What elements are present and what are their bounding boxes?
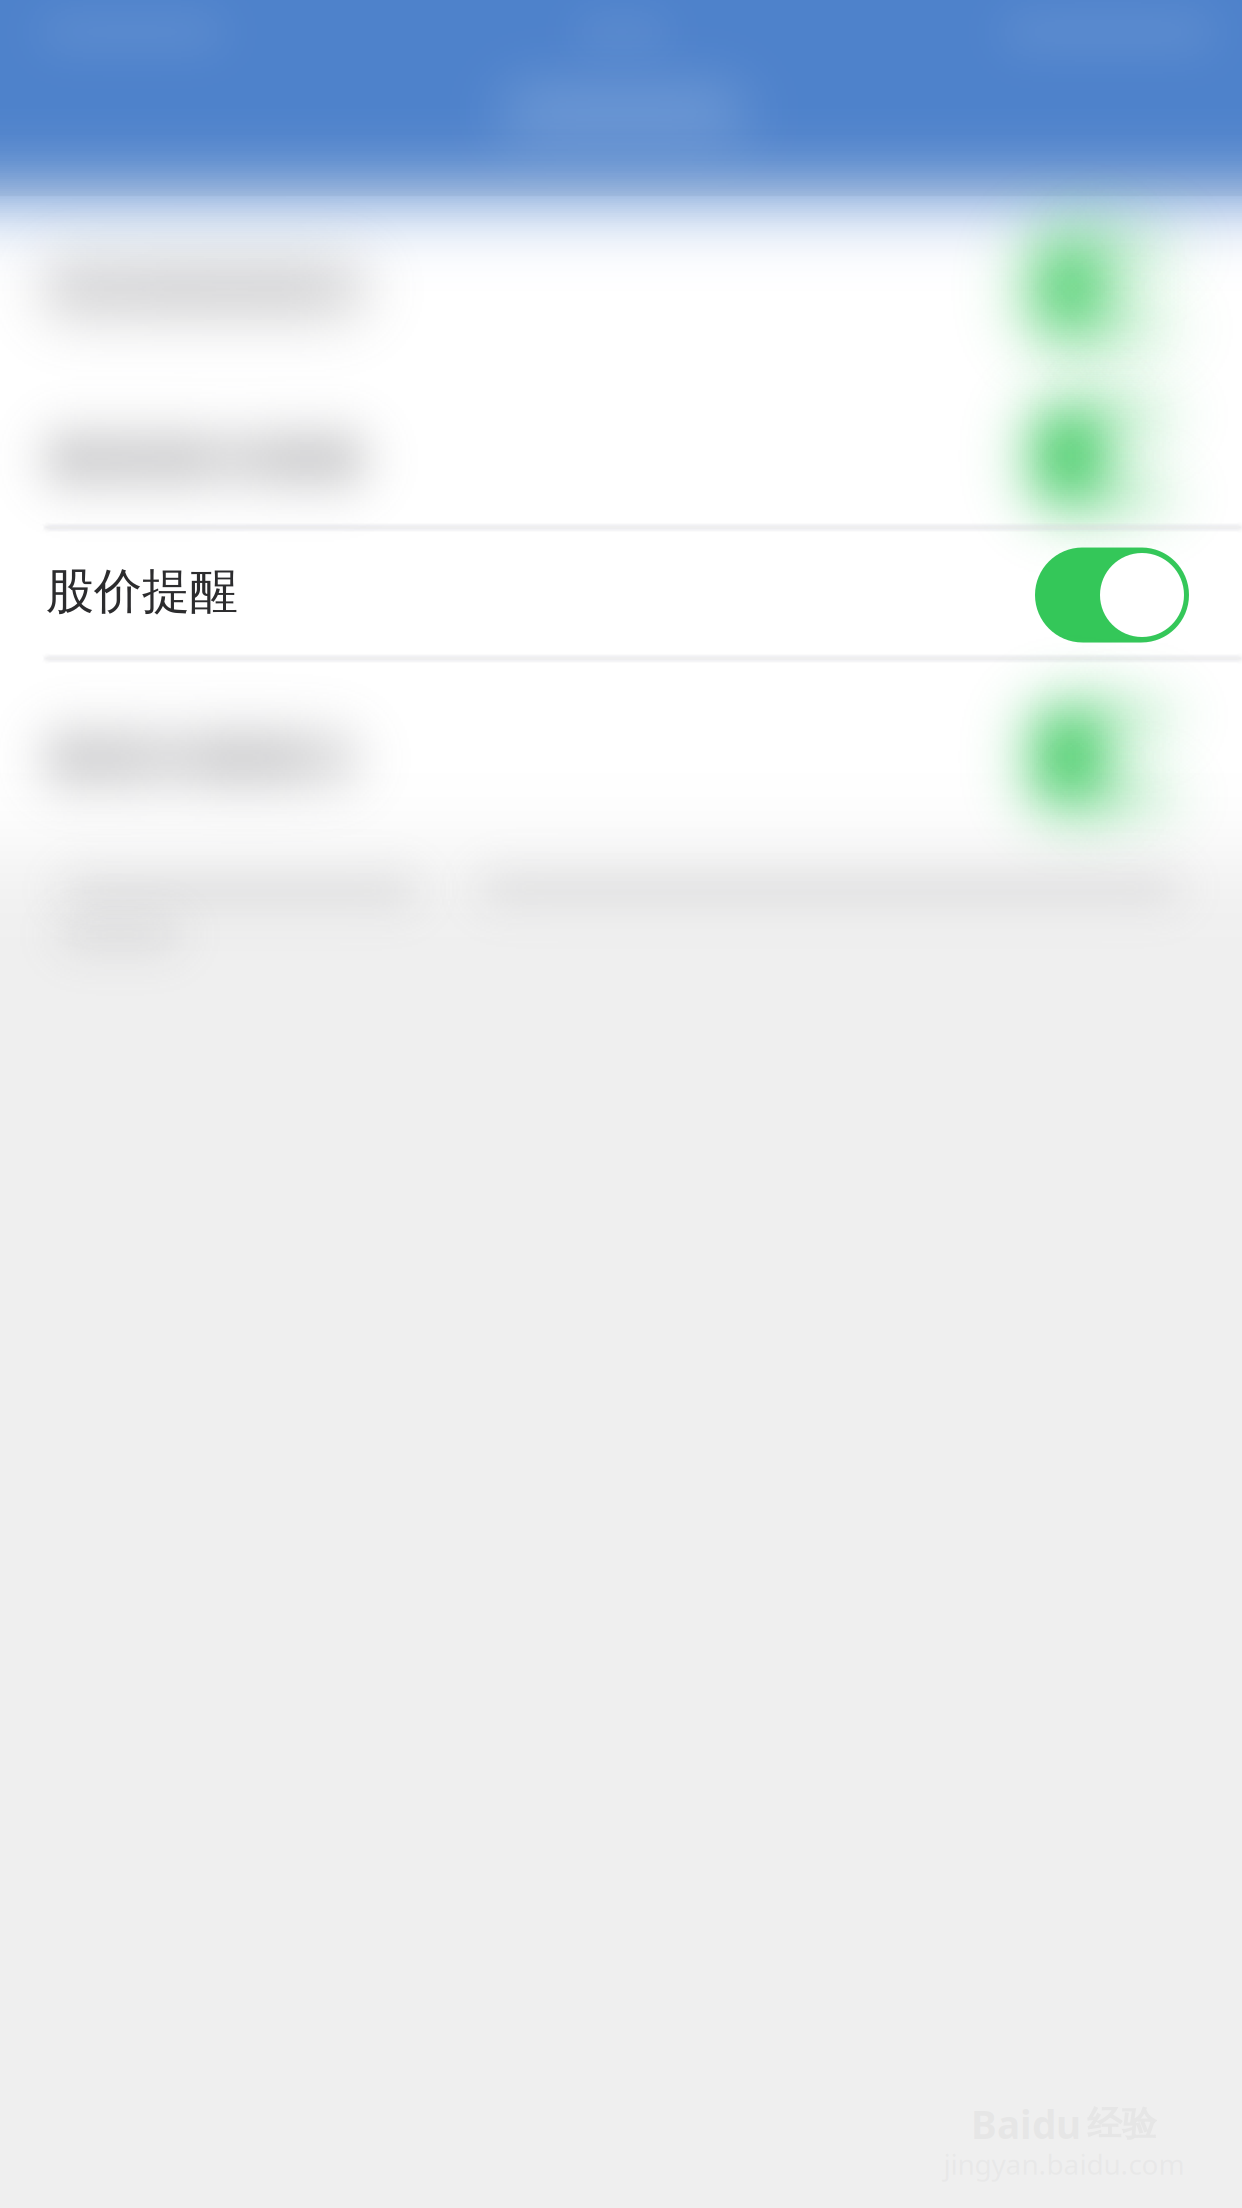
staticText: 股价提醒 — [46, 562, 238, 621]
button[interactable]: 股价提醒 — [1035, 547, 1189, 642]
staticText: Baidu — [971, 2098, 1081, 2150]
staticText: 经验 — [1087, 2103, 1157, 2145]
